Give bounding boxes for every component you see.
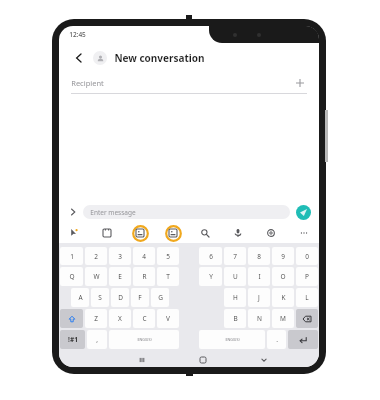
button[interactable]: N xyxy=(248,309,270,328)
button[interactable]: Image xyxy=(131,224,149,242)
button[interactable]: U xyxy=(224,267,246,286)
button[interactable]: Search xyxy=(196,224,214,242)
button[interactable]: Gallery xyxy=(164,224,182,242)
button[interactable]: 2 xyxy=(85,247,107,265)
button[interactable]: Calendar xyxy=(98,224,116,242)
staticText: Recipient xyxy=(71,78,104,88)
button[interactable]: X xyxy=(109,309,131,328)
staticText: O xyxy=(280,272,286,281)
button[interactable]: V xyxy=(157,309,179,328)
staticText: N xyxy=(257,314,262,323)
button[interactable]: T xyxy=(157,267,179,286)
staticText: F xyxy=(138,293,142,302)
button[interactable]: . xyxy=(267,330,286,349)
button[interactable]: Backspace xyxy=(296,309,318,328)
button[interactable]: , xyxy=(87,330,107,349)
button[interactable]: J xyxy=(248,288,270,307)
staticText: Y xyxy=(209,272,213,281)
staticText: !#1 xyxy=(68,335,78,344)
button[interactable]: More xyxy=(295,224,313,242)
button[interactable]: Voice xyxy=(229,224,247,242)
staticText: ENG(US) xyxy=(137,337,152,342)
button[interactable]: Enter xyxy=(288,330,318,349)
button[interactable]: K xyxy=(272,288,294,307)
button[interactable]: 5 xyxy=(157,247,179,265)
staticText: 3 xyxy=(118,252,122,261)
button[interactable]: B xyxy=(224,309,246,328)
button[interactable]: D xyxy=(111,288,129,307)
staticText: S xyxy=(98,293,102,302)
button[interactable]: 1 xyxy=(60,247,83,265)
staticText: New conversation xyxy=(114,51,205,65)
button[interactable]: G xyxy=(151,288,169,307)
button[interactable]: Contact xyxy=(93,51,107,65)
staticText: G xyxy=(158,293,163,302)
staticText: 1 xyxy=(70,252,74,261)
staticText: H xyxy=(233,293,238,302)
staticText: X xyxy=(118,314,122,323)
staticText: . xyxy=(276,335,278,344)
button[interactable]: S xyxy=(91,288,109,307)
staticText: 9 xyxy=(281,252,285,261)
button[interactable]: Add recipient xyxy=(293,76,307,90)
staticText: U xyxy=(233,272,238,281)
staticText: Enter message xyxy=(90,208,136,217)
button[interactable]: A xyxy=(71,288,89,307)
staticText: 12:45 xyxy=(69,30,86,39)
button[interactable]: F xyxy=(131,288,149,307)
staticText: B xyxy=(233,314,238,323)
button[interactable]: I xyxy=(248,267,270,286)
button[interactable]: Shift xyxy=(60,309,83,328)
button[interactable]: Z xyxy=(85,309,107,328)
button[interactable]: 6 xyxy=(199,247,222,265)
staticText: ENG(US) xyxy=(225,337,240,342)
staticText: W xyxy=(93,272,100,281)
button[interactable]: 9 xyxy=(272,247,294,265)
button[interactable]: C xyxy=(133,309,155,328)
button[interactable]: 7 xyxy=(224,247,246,265)
staticText: T xyxy=(166,272,170,281)
staticText: C xyxy=(142,314,147,323)
button[interactable]: P xyxy=(296,267,318,286)
button[interactable]: Y xyxy=(199,267,222,286)
button[interactable]: Send xyxy=(296,205,311,220)
staticText: R xyxy=(142,272,147,281)
button[interactable]: W xyxy=(85,267,107,286)
button[interactable]: H xyxy=(224,288,246,307)
button[interactable]: E xyxy=(109,267,131,286)
button[interactable]: Home xyxy=(197,354,209,366)
button[interactable]: 8 xyxy=(248,247,270,265)
button[interactable]: L xyxy=(296,288,318,307)
staticText: 4 xyxy=(142,252,146,261)
button[interactable]: Back xyxy=(258,354,270,366)
button[interactable]: ENG(US) xyxy=(109,330,179,349)
button[interactable]: Back xyxy=(71,50,87,66)
button[interactable]: 0 xyxy=(296,247,318,265)
staticText: Q xyxy=(69,272,75,281)
button[interactable]: Settings xyxy=(262,224,280,242)
staticText: P xyxy=(305,272,309,281)
button[interactable]: Expand xyxy=(67,206,79,218)
staticText: K xyxy=(281,293,286,302)
button[interactable]: Q xyxy=(60,267,83,286)
staticText: D xyxy=(118,293,123,302)
button[interactable]: M xyxy=(272,309,294,328)
button[interactable]: Recents xyxy=(136,354,148,366)
button[interactable]: !#1 xyxy=(60,330,85,349)
staticText: Z xyxy=(94,314,98,323)
button[interactable]: Enter message xyxy=(83,205,290,219)
staticText: 7 xyxy=(233,252,237,261)
button[interactable]: R xyxy=(133,267,155,286)
staticText: 0 xyxy=(305,252,309,261)
button[interactable]: ENG(US) xyxy=(199,330,265,349)
button[interactable]: Sticker xyxy=(65,224,83,242)
staticText: J xyxy=(258,293,260,302)
staticText: L xyxy=(305,293,309,302)
button[interactable]: 3 xyxy=(109,247,131,265)
button[interactable]: 4 xyxy=(133,247,155,265)
staticText: I xyxy=(258,272,261,281)
staticText: M xyxy=(280,314,286,323)
staticText: 2 xyxy=(94,252,98,261)
button[interactable]: O xyxy=(272,267,294,286)
